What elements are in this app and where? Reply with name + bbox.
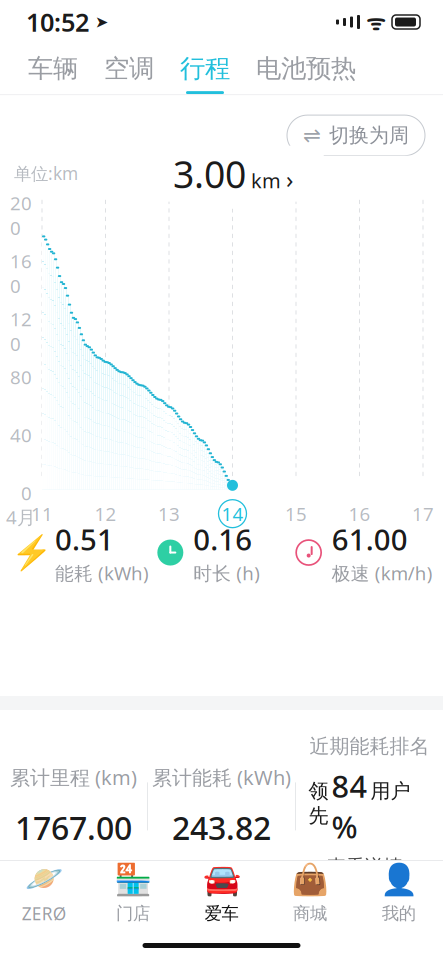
staticText: 门店 [116, 903, 150, 924]
staticText: 用户 [370, 779, 410, 803]
staticText: 17 [412, 501, 434, 526]
button[interactable]: Stores tab [89, 861, 177, 925]
staticText: 16 [348, 501, 370, 526]
staticText: 领先 [308, 779, 328, 828]
staticText: 极速 (km/h) [332, 561, 433, 585]
staticText: 0.51 [55, 520, 114, 559]
staticText: 电池预热 [256, 53, 356, 84]
staticText: 查看详情 [327, 855, 403, 878]
staticText: ⚡ [11, 533, 53, 572]
staticText: km [251, 167, 281, 194]
button[interactable]: 空调 [104, 44, 154, 94]
staticText: ᯤ [360, 8, 385, 36]
staticText: 切换为周 [329, 123, 409, 148]
staticText: 近期能耗排名 [309, 734, 429, 759]
staticText: 12 [94, 501, 116, 526]
staticText: 120 [10, 307, 32, 356]
button[interactable]: My Car tab [177, 861, 266, 925]
staticText: 爱车 [204, 903, 238, 924]
staticText: 🚘 [202, 862, 240, 897]
staticText: 车辆 [28, 53, 78, 84]
staticText: 我的 [382, 903, 416, 924]
staticText: ⇌ [303, 123, 321, 147]
button[interactable]: 车辆 [28, 44, 78, 94]
staticText: 0 [21, 481, 32, 505]
staticText: 👜 [291, 862, 329, 897]
staticText: 0.16 [193, 520, 252, 559]
button[interactable]: ZERO tab [0, 861, 89, 925]
button[interactable]: 行程 [180, 44, 230, 94]
staticText: 40 [10, 423, 32, 447]
staticText: 61.00 [332, 520, 408, 559]
staticText: ZERØ [22, 902, 67, 925]
staticText: 4月 [6, 505, 36, 529]
staticText: 时长 (h) [193, 561, 260, 585]
staticText: 🏪 [114, 862, 152, 897]
button[interactable]: Mall tab [266, 861, 354, 925]
staticText: 13 [158, 501, 180, 526]
staticText: 160 [10, 249, 32, 298]
button[interactable]: 电池预热 [256, 44, 356, 94]
staticText: 3.00 [173, 149, 246, 198]
staticText: 84% [331, 766, 367, 847]
staticText: 10:52 [26, 5, 89, 39]
staticText: › [286, 163, 293, 195]
staticText: 243.82 [172, 806, 271, 849]
staticText: 11 [31, 501, 53, 526]
staticText: ➤ [89, 13, 108, 31]
staticText: 80 [10, 365, 32, 389]
staticText: › [406, 854, 412, 879]
button[interactable]: 近期能耗排名 [296, 734, 443, 879]
staticText: 单位:km [14, 162, 78, 185]
staticText: 200 [10, 191, 32, 240]
staticText: 🪐 [25, 861, 63, 896]
staticText: 15 [285, 501, 307, 526]
button[interactable]: Profile tab [354, 861, 443, 925]
staticText: 空调 [104, 53, 154, 84]
staticText: 👤 [380, 862, 418, 897]
staticText: 累计里程 (km) [10, 764, 137, 790]
staticText: 能耗 (kWh) [55, 561, 149, 585]
staticText: 14 [221, 501, 243, 526]
staticText: 1767.00 [15, 806, 132, 849]
button[interactable]: ⇌ [287, 115, 425, 156]
staticText: 商城 [293, 903, 327, 924]
staticText: 累计能耗 (kWh) [152, 764, 291, 790]
staticText: 行程 [180, 53, 230, 84]
